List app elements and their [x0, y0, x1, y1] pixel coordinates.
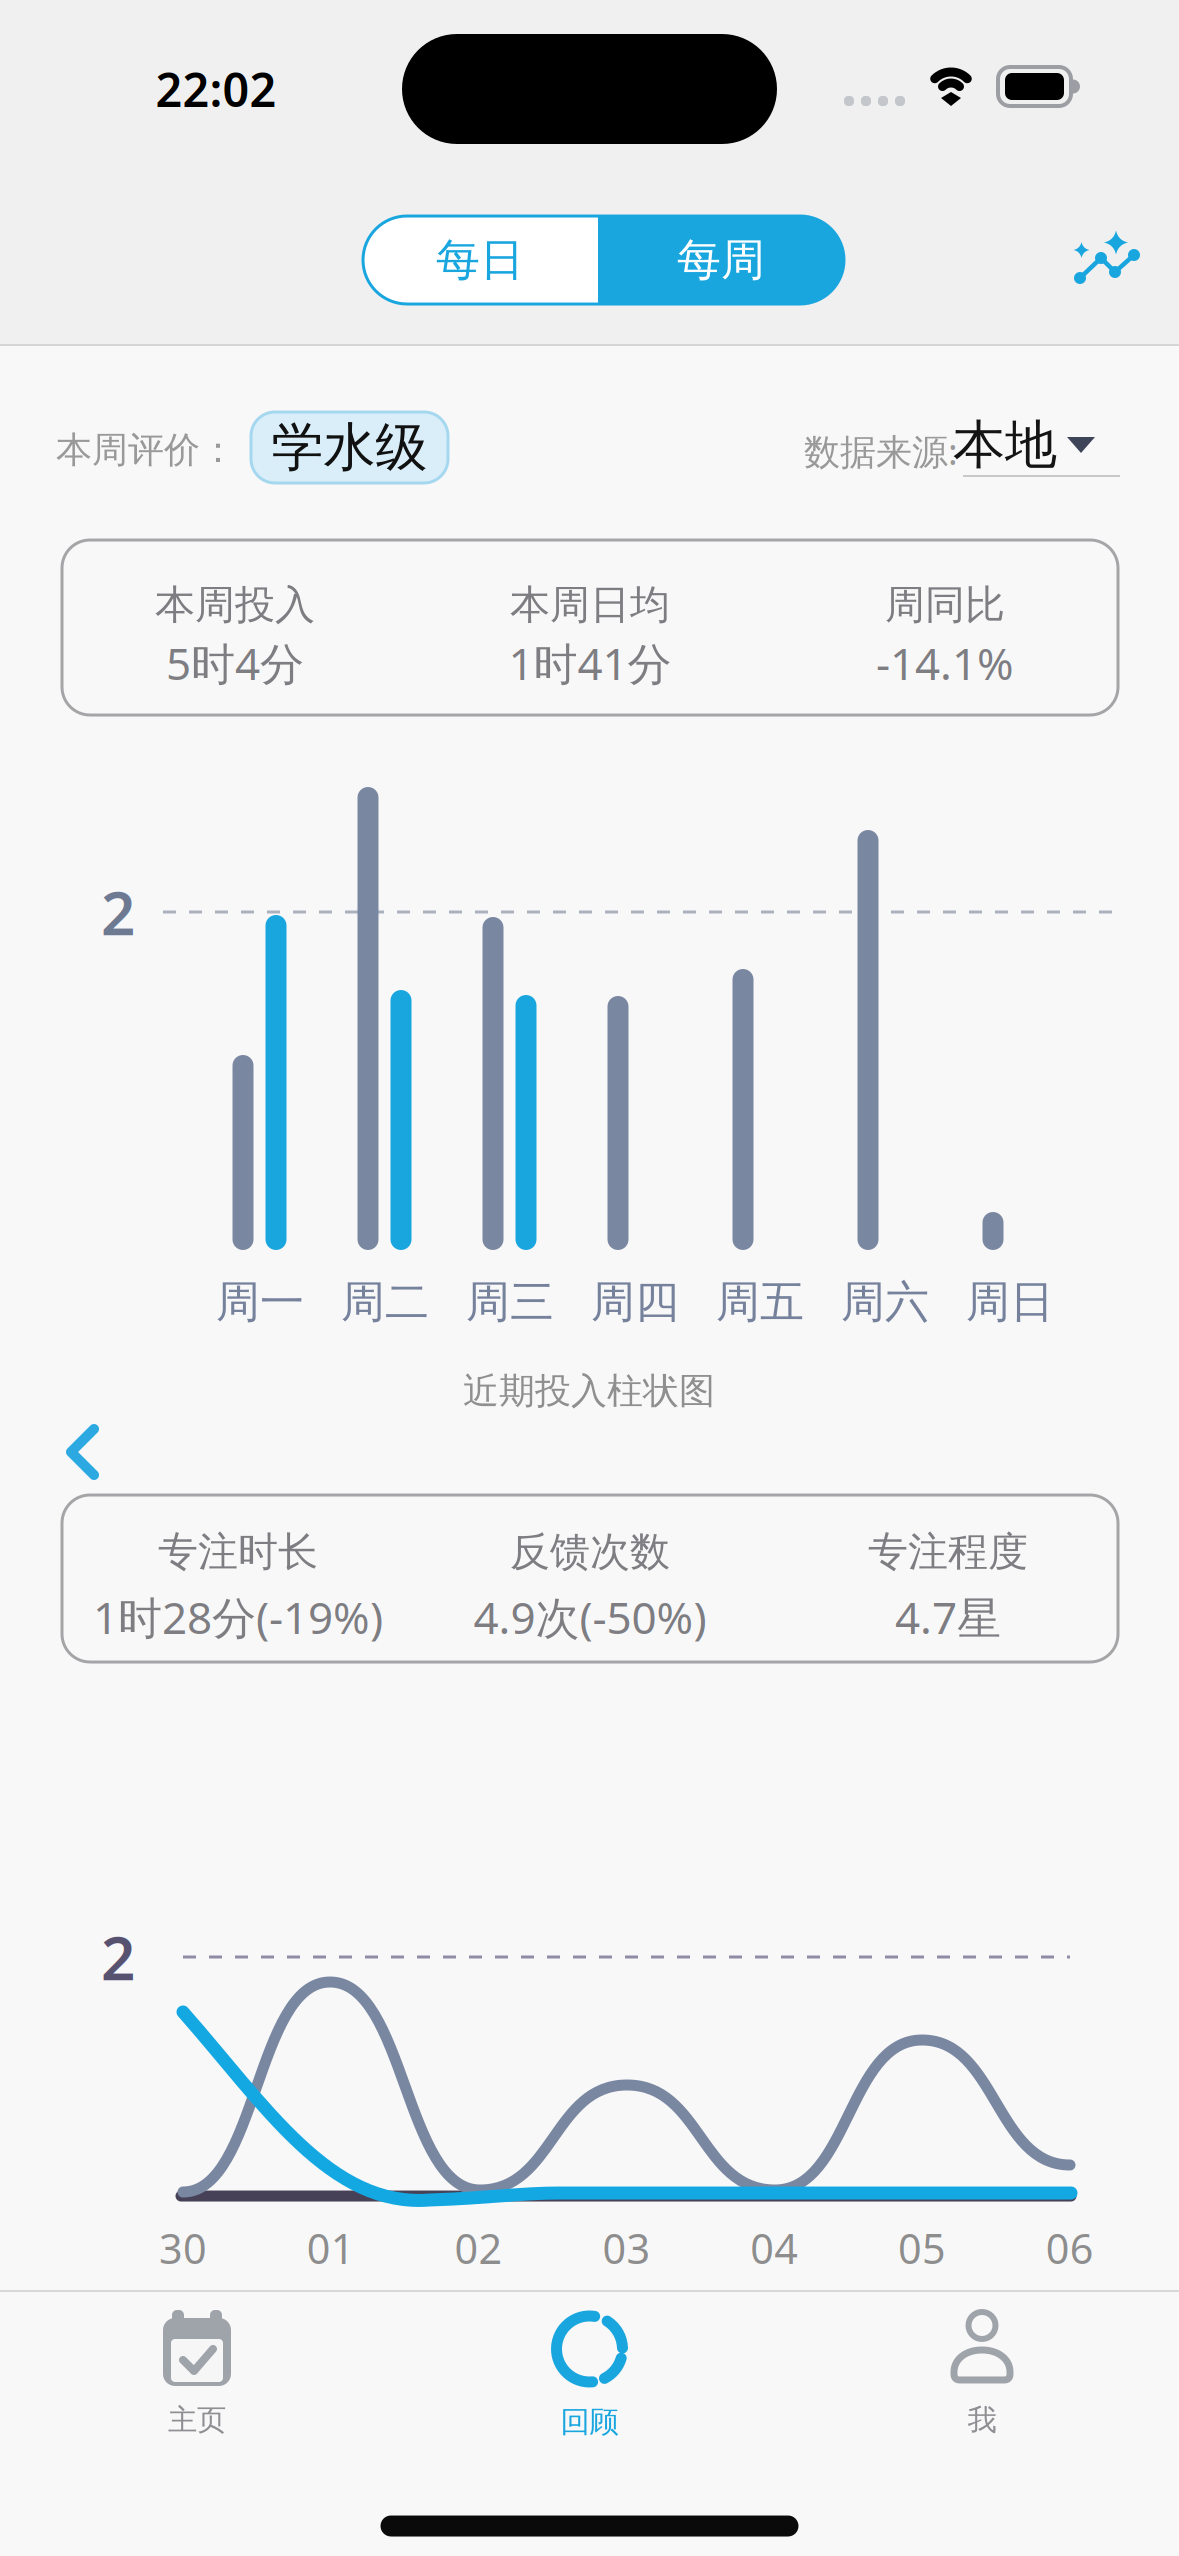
staticText: 1时28分(-19%)	[93, 1588, 383, 1646]
staticText: 5时4分	[166, 634, 304, 692]
staticText: 2	[101, 1917, 135, 1997]
staticText: 我	[967, 2402, 996, 2438]
staticText: 反馈次数	[510, 1527, 670, 1576]
staticText: 每日	[436, 233, 524, 287]
staticText: 30	[159, 2221, 207, 2275]
staticText: 03	[602, 2221, 650, 2275]
staticText: 周五	[716, 1275, 804, 1329]
staticText: 22:02	[155, 58, 276, 120]
staticText: 本周日均	[510, 580, 670, 629]
staticText: 周六	[841, 1275, 929, 1329]
staticText: 学水级	[271, 416, 427, 479]
staticText: 05	[898, 2221, 946, 2275]
staticText: 回顾	[560, 2404, 618, 2440]
staticText: 数据来源:	[804, 427, 958, 475]
staticText: 本周评价：	[56, 428, 236, 472]
staticText: 周二	[341, 1275, 429, 1329]
staticText: 本周投入	[155, 580, 315, 629]
staticText: 周四	[591, 1275, 679, 1329]
button[interactable]: 上一周	[58, 1421, 118, 1483]
button[interactable]: 主页	[77, 2299, 317, 2449]
staticText: 06	[1046, 2221, 1094, 2275]
staticText: 专注时长	[158, 1527, 318, 1576]
staticText: 本地	[953, 413, 1057, 477]
staticText: 4.7星	[895, 1588, 1001, 1646]
staticText: -14.1%	[876, 634, 1014, 692]
button[interactable]: 每周	[598, 216, 844, 304]
staticText: 01	[307, 2221, 355, 2275]
staticText: 周三	[466, 1275, 554, 1329]
staticText: 专注程度	[868, 1527, 1028, 1576]
button[interactable]: 每日	[363, 216, 597, 304]
staticText: 周一	[216, 1275, 304, 1329]
button[interactable]: 趋势	[1062, 223, 1152, 293]
staticText: 2	[101, 872, 135, 952]
staticText: 周同比	[885, 580, 1005, 629]
staticText: 周日	[966, 1275, 1054, 1329]
staticText: 02	[455, 2221, 503, 2275]
staticText: 每周	[677, 233, 765, 287]
button[interactable]: 学水级	[251, 412, 448, 483]
staticText: 1时41分	[508, 634, 671, 692]
button[interactable]: 本地	[963, 419, 1120, 477]
staticText: 04	[750, 2221, 798, 2275]
staticText: 近期投入柱状图	[463, 1369, 715, 1413]
button[interactable]: 我	[862, 2299, 1102, 2449]
staticText: 主页	[168, 2402, 226, 2438]
staticText: 4.9次(-50%)	[473, 1588, 706, 1646]
button[interactable]: 回顾	[469, 2299, 709, 2449]
